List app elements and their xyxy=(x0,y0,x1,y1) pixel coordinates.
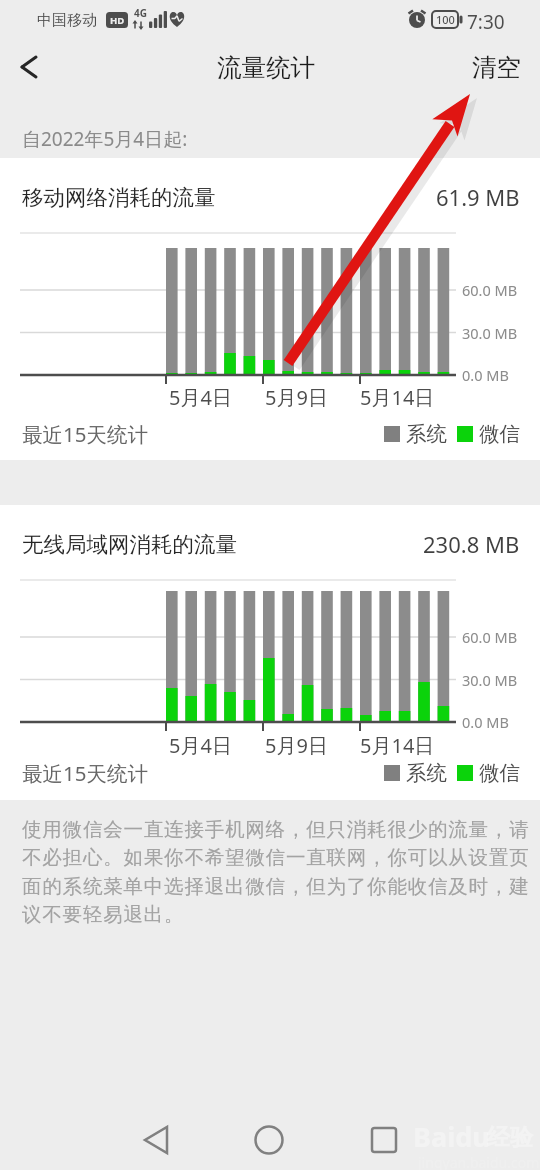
staticText: 微信 xyxy=(479,760,520,786)
staticText: 4G xyxy=(134,6,147,19)
staticText: 100 xyxy=(436,12,455,27)
button[interactable] xyxy=(134,1118,178,1162)
staticText: 5月14日 xyxy=(360,384,435,410)
staticText: HD xyxy=(110,14,125,27)
staticText: 中国移动 xyxy=(37,11,97,28)
staticText: 系统 xyxy=(406,421,447,447)
staticText: 移动网络消耗的流量 xyxy=(22,184,216,211)
staticText: 7:30 xyxy=(467,9,505,31)
staticText: 30.0 MB xyxy=(462,670,518,690)
staticText: 使用微信会一直连接手机网络，但只消耗很少的流量，请 xyxy=(22,817,530,842)
staticText: 60.0 MB xyxy=(462,627,518,647)
staticText: 5月4日 xyxy=(169,384,232,410)
button[interactable] xyxy=(247,1118,291,1162)
staticText: 30.0 MB xyxy=(462,323,518,343)
staticText: 61.9 MB xyxy=(436,182,520,212)
staticText: 0.0 MB xyxy=(462,712,509,732)
staticText: 60.0 MB xyxy=(462,280,518,300)
staticText: 5月14日 xyxy=(360,732,435,758)
staticText: 自2022年5月4日起: xyxy=(22,126,188,152)
button[interactable]: 清空 xyxy=(0,0,76,34)
staticText: 清空 xyxy=(472,52,521,83)
staticText: 0.0 MB xyxy=(462,365,509,385)
staticText: 面的系统菜单中选择退出微信，但为了你能收信及时，建 xyxy=(22,874,530,899)
button[interactable] xyxy=(362,1118,406,1162)
staticText: 系统 xyxy=(406,760,447,786)
staticText: 最近15天统计 xyxy=(22,759,148,787)
staticText: 无线局域网消耗的流量 xyxy=(22,531,237,558)
staticText: 5月4日 xyxy=(169,732,232,758)
staticText: 5月9日 xyxy=(265,384,328,410)
button[interactable] xyxy=(8,53,52,83)
staticText: 流量统计 xyxy=(217,52,315,83)
staticText: 5月9日 xyxy=(265,732,328,758)
staticText: 最近15天统计 xyxy=(22,420,148,448)
staticText: 不必担心。如果你不希望微信一直联网，你可以从设置页 xyxy=(22,845,530,870)
staticText: 230.8 MB xyxy=(423,529,520,559)
staticText: 议不要轻易退出。 xyxy=(22,902,185,927)
staticText: 微信 xyxy=(479,421,520,447)
